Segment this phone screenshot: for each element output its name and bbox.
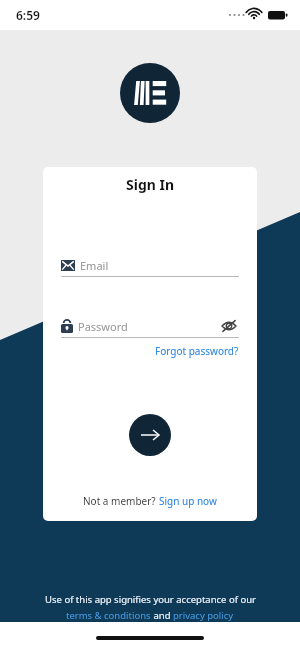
- staticText: Sign up now: [159, 494, 217, 508]
- staticText: terms & conditions: [66, 609, 151, 622]
- staticText: Sign In: [43, 175, 257, 194]
- button[interactable]: Sign in: [129, 414, 171, 456]
- button[interactable]: Sign up now: [159, 494, 217, 508]
- button[interactable]: privacy policy: [173, 609, 234, 622]
- button[interactable]: Email: [61, 254, 239, 276]
- staticText: and: [151, 609, 173, 622]
- staticText: Password: [78, 319, 128, 334]
- staticText: Not a member?: [83, 494, 159, 508]
- staticText: Forgot password?: [155, 344, 239, 358]
- staticText: privacy policy: [173, 609, 234, 622]
- button[interactable]: terms & conditions: [66, 609, 151, 622]
- button[interactable]: Password: [61, 315, 239, 337]
- button[interactable]: Show password: [219, 316, 239, 336]
- staticText: Use of this app signifies your acceptanc…: [45, 593, 256, 606]
- staticText: Email: [80, 258, 109, 273]
- staticText: 6:59: [16, 7, 40, 23]
- button[interactable]: Forgot password?: [155, 344, 239, 358]
